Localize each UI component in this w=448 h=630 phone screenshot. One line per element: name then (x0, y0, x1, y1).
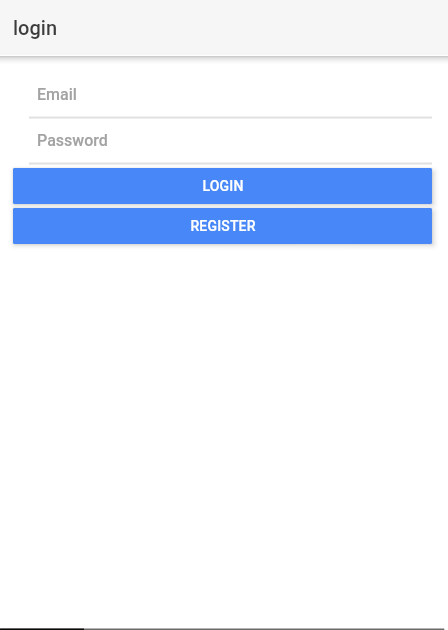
staticText: login (13, 16, 58, 39)
button[interactable]: LOGIN (13, 168, 432, 204)
staticText: Password (37, 131, 108, 150)
staticText: REGISTER (190, 218, 256, 234)
staticText: Email (37, 85, 77, 104)
button[interactable]: REGISTER (13, 208, 432, 244)
staticText: LOGIN (202, 178, 244, 194)
button[interactable]: login (0, 0, 448, 55)
